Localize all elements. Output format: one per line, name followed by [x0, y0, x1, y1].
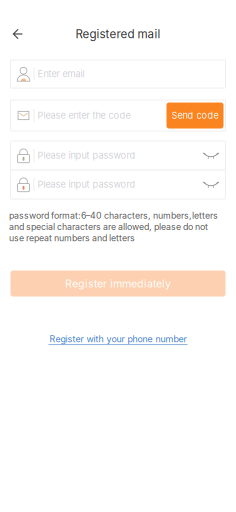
staticText: Register immediately: [65, 277, 171, 290]
button[interactable]: Show password: [197, 143, 224, 167]
staticText: Send code: [171, 110, 218, 121]
staticText: Please enter the code: [37, 110, 130, 121]
button[interactable]: Register with your phone number: [48, 333, 187, 345]
staticText: Enter email: [37, 68, 84, 79]
staticText: Please input password: [37, 150, 135, 161]
staticText: password format:6–40 characters, numbers…: [9, 210, 218, 243]
button[interactable]: Send code: [166, 102, 223, 128]
button[interactable]: Show confirm password: [197, 172, 224, 196]
button[interactable]: Register immediately: [10, 270, 225, 296]
staticText: Please input password: [37, 179, 135, 190]
staticText: Registered mail: [75, 27, 160, 41]
staticText: Register with your phone number: [49, 333, 186, 344]
button[interactable]: Back: [4, 20, 32, 48]
